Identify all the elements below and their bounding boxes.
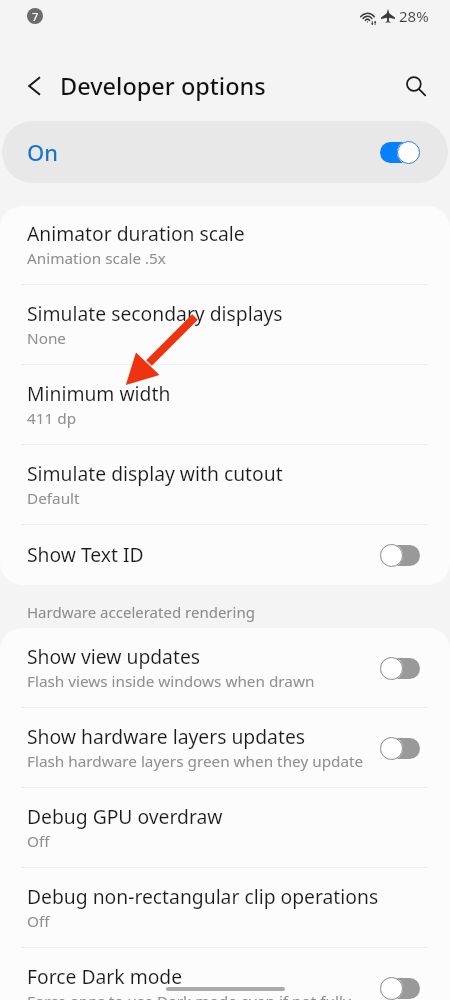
staticText: Force Dark mode — [27, 963, 183, 989]
staticText: Flash views inside windows when drawn — [27, 671, 315, 692]
staticText: Show hardware layers updates — [27, 723, 306, 749]
button[interactable]: Debug GPU overdraw — [0, 788, 450, 868]
button[interactable]: Show view updates — [0, 628, 450, 708]
staticText: Animation scale .5x — [27, 248, 166, 269]
button[interactable]: Toggle off — [380, 544, 420, 567]
staticText: Off — [27, 831, 50, 852]
staticText: Flash hardware layers green when they up… — [27, 751, 364, 772]
staticText: Simulate display with cutout — [27, 460, 283, 486]
staticText: Simulate secondary displays — [27, 300, 283, 326]
button[interactable]: Show Text ID — [0, 525, 450, 585]
staticText: Default — [27, 488, 80, 509]
button[interactable]: Toggle off — [380, 657, 420, 680]
staticText: Force apps to use Dark mode even if not … — [27, 991, 351, 1000]
staticText: Show view updates — [27, 643, 201, 669]
staticText: Hardware accelerated rendering — [27, 602, 255, 622]
button[interactable]: Debug non-rectangular clip operations — [0, 868, 450, 948]
staticText: Developer options — [60, 70, 266, 102]
button[interactable]: Minimum width — [0, 365, 450, 445]
button[interactable]: Toggle off — [380, 737, 420, 760]
button[interactable]: Simulate display with cutout — [0, 445, 450, 525]
staticText: Minimum width — [27, 380, 171, 406]
button[interactable]: Show hardware layers updates — [0, 708, 450, 788]
staticText: Show Text ID — [27, 541, 144, 567]
staticText: 411 dp — [27, 408, 77, 429]
staticText: Off — [27, 911, 50, 932]
button[interactable]: Toggle on — [380, 141, 420, 164]
staticText: Debug GPU overdraw — [27, 803, 223, 829]
button[interactable]: Simulate secondary displays — [0, 285, 450, 365]
staticText: 28% — [399, 6, 429, 26]
staticText: Animator duration scale — [27, 220, 245, 246]
button[interactable]: On — [2, 121, 448, 183]
button[interactable]: Back — [14, 66, 54, 106]
button[interactable]: Force Dark mode — [0, 948, 450, 1000]
button[interactable]: Animator duration scale — [0, 206, 450, 285]
staticText: Debug non-rectangular clip operations — [27, 883, 379, 909]
staticText: On — [27, 137, 59, 167]
staticText: None — [27, 328, 66, 349]
button[interactable]: Search — [396, 66, 436, 106]
staticText: 7 — [32, 9, 39, 24]
button[interactable]: Toggle off — [380, 977, 420, 1000]
